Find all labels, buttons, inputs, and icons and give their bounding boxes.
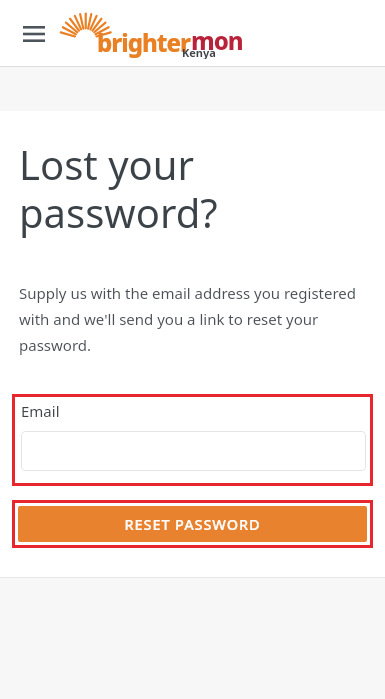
button[interactable]: Open navigation menu [14, 14, 54, 54]
staticText: RESET PASSWORD [124, 514, 261, 534]
button[interactable]: RESET PASSWORD [18, 506, 367, 542]
staticText: Lost your password? [19, 137, 218, 240]
staticText: Kenya [182, 45, 216, 59]
staticText: Supply us with the email address you reg… [19, 283, 363, 356]
staticText: brighter [97, 26, 191, 59]
staticText: monday [191, 24, 249, 59]
button[interactable]: Email [12, 394, 373, 486]
button[interactable]: RESET PASSWORD [12, 500, 373, 548]
button[interactable]: BrighterMonday Kenya home [65, 9, 249, 59]
staticText: Email [21, 401, 60, 421]
